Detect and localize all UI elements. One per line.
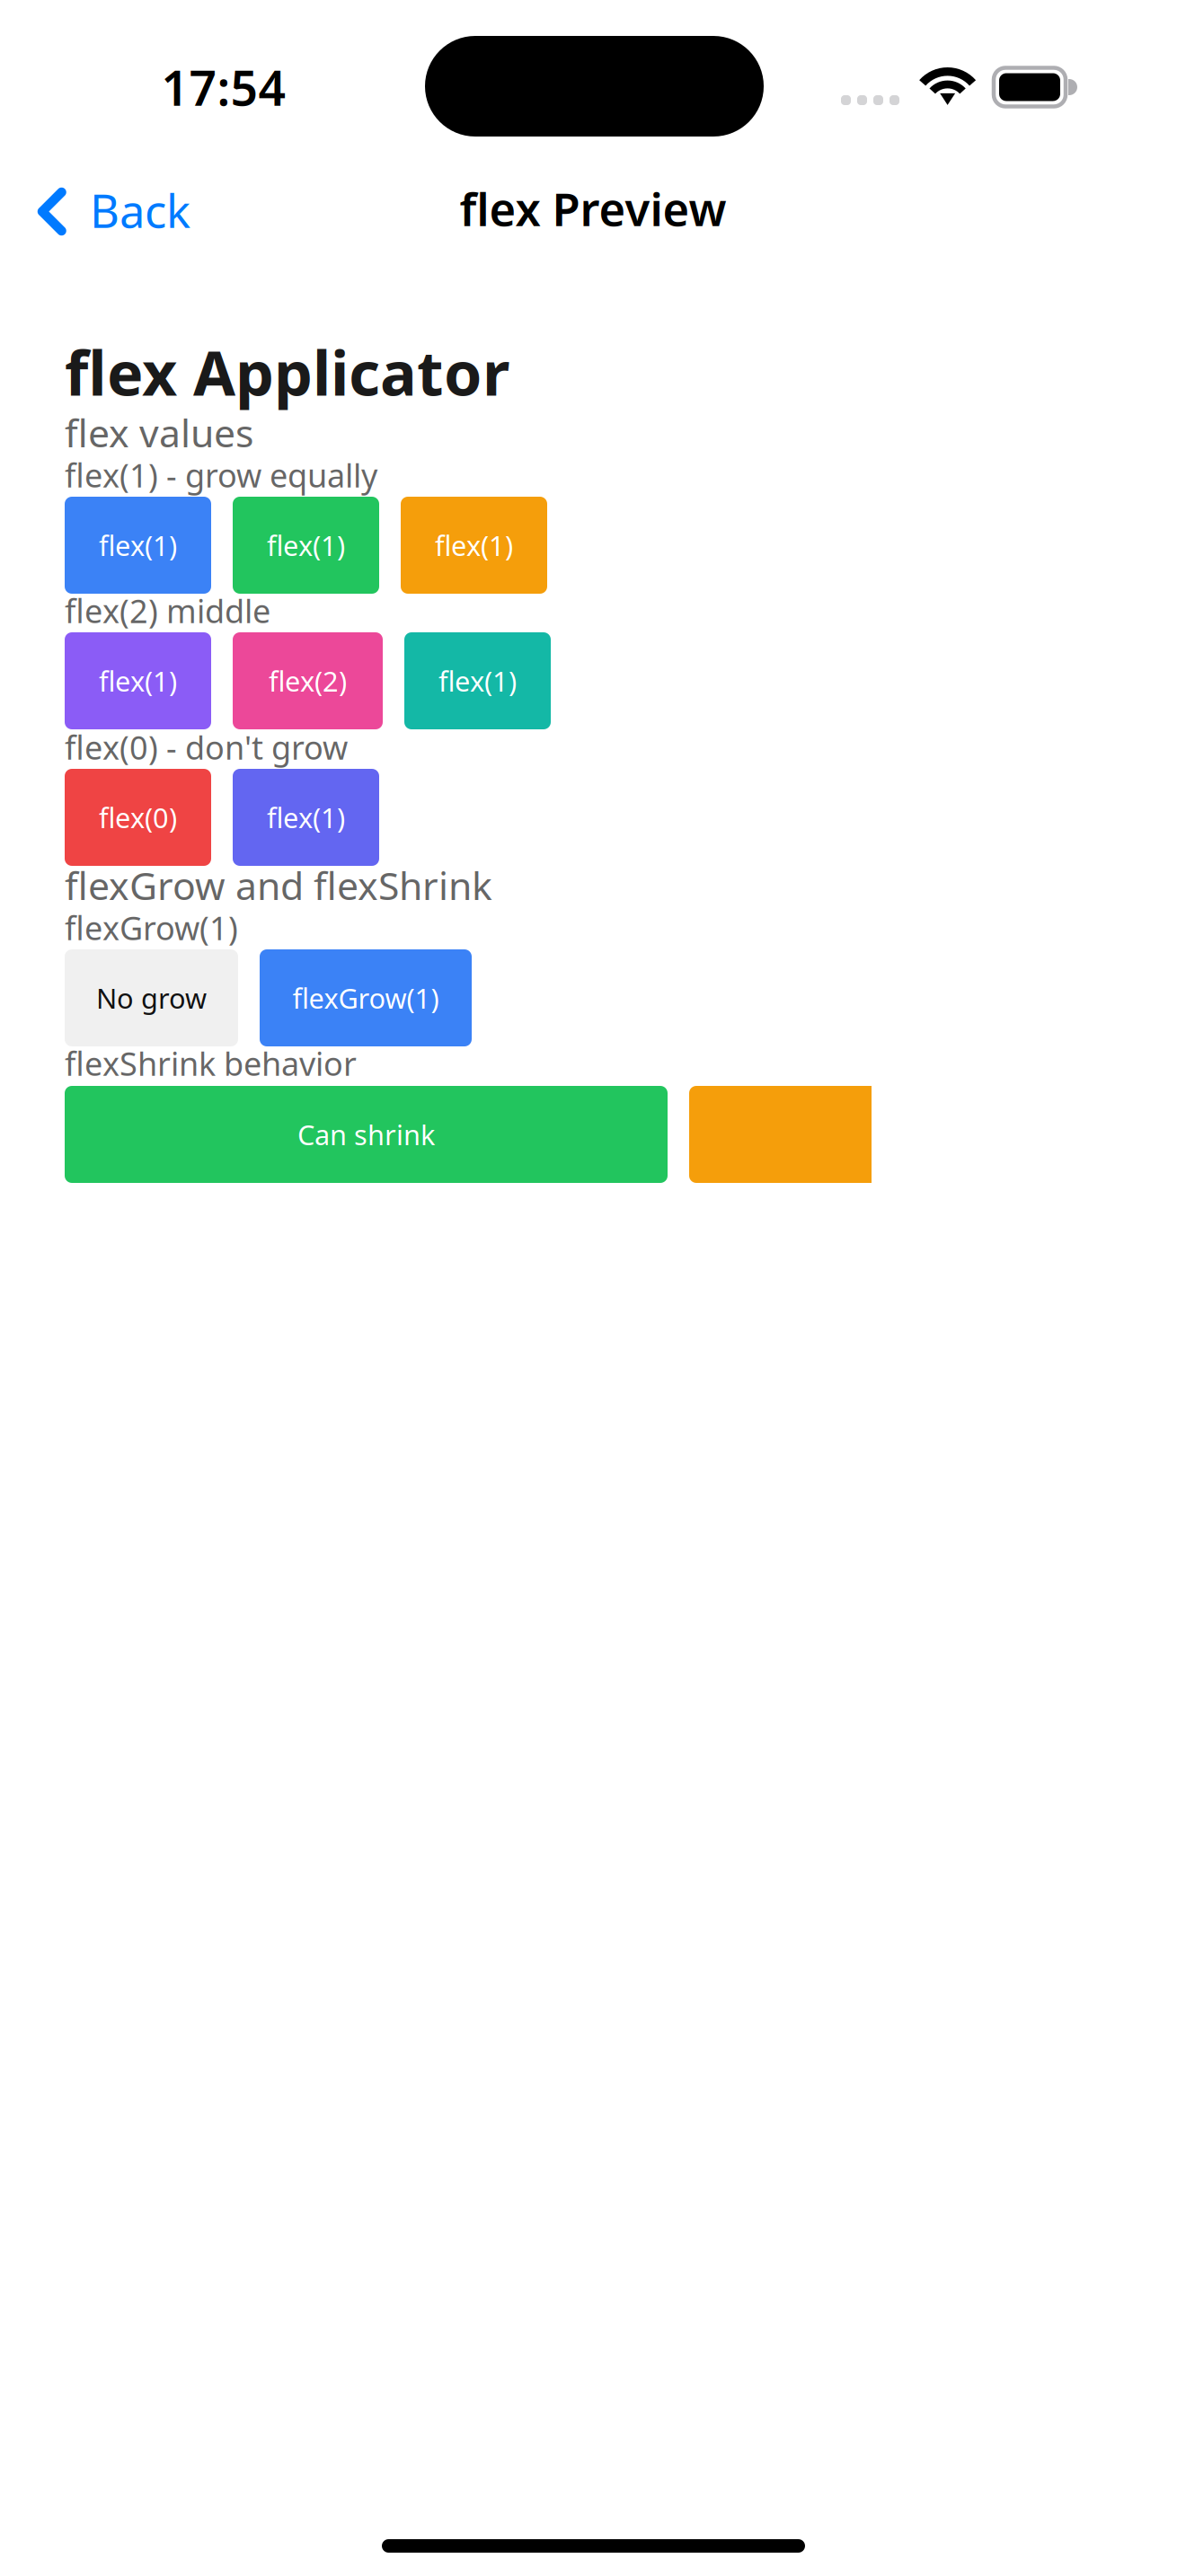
button[interactable]: flex(2): [233, 632, 383, 729]
staticText: flex(1): [435, 527, 513, 563]
staticText: 17:54: [161, 55, 286, 119]
button[interactable]: flex(1): [401, 497, 547, 594]
staticText: flexGrow(1): [292, 980, 439, 1016]
staticText: flex(1) - grow equally: [65, 454, 377, 497]
button[interactable]: flex(1): [65, 632, 211, 729]
staticText: flexGrow and flexShrink: [65, 860, 492, 910]
button[interactable]: flex(0): [65, 769, 211, 866]
button[interactable]: No grow: [65, 949, 238, 1046]
staticText: Can shrink: [297, 1116, 435, 1153]
staticText: flex(2): [269, 663, 347, 699]
staticText: No grow: [96, 980, 207, 1016]
button[interactable]: flexGrow(1): [260, 949, 472, 1046]
staticText: flex(2) middle: [65, 589, 270, 632]
button[interactable]: flex(1): [404, 632, 551, 729]
staticText: flex(1): [438, 663, 517, 699]
staticText: flex Applicator: [65, 331, 509, 413]
staticText: flex(0): [99, 799, 177, 836]
staticText: flex(1): [99, 527, 177, 563]
staticText: Back: [90, 180, 190, 240]
staticText: flex(0) - don't grow: [65, 726, 348, 769]
button[interactable]: flex(1): [65, 497, 211, 594]
button[interactable]: Can shrink: [65, 1086, 668, 1183]
staticText: flexGrow(1): [65, 906, 238, 949]
button[interactable]: Back: [0, 165, 214, 255]
staticText: flex values: [65, 407, 253, 458]
staticText: flex(1): [267, 527, 345, 563]
button[interactable]: Cannot shrink: [689, 1086, 872, 1183]
staticText: flexShrink behavior: [65, 1042, 357, 1085]
button[interactable]: flex(1): [233, 497, 379, 594]
staticText: flex(1): [99, 663, 177, 699]
staticText: flex(1): [267, 799, 345, 836]
button[interactable]: flex(1): [233, 769, 379, 866]
staticText: flex Preview: [460, 178, 726, 239]
